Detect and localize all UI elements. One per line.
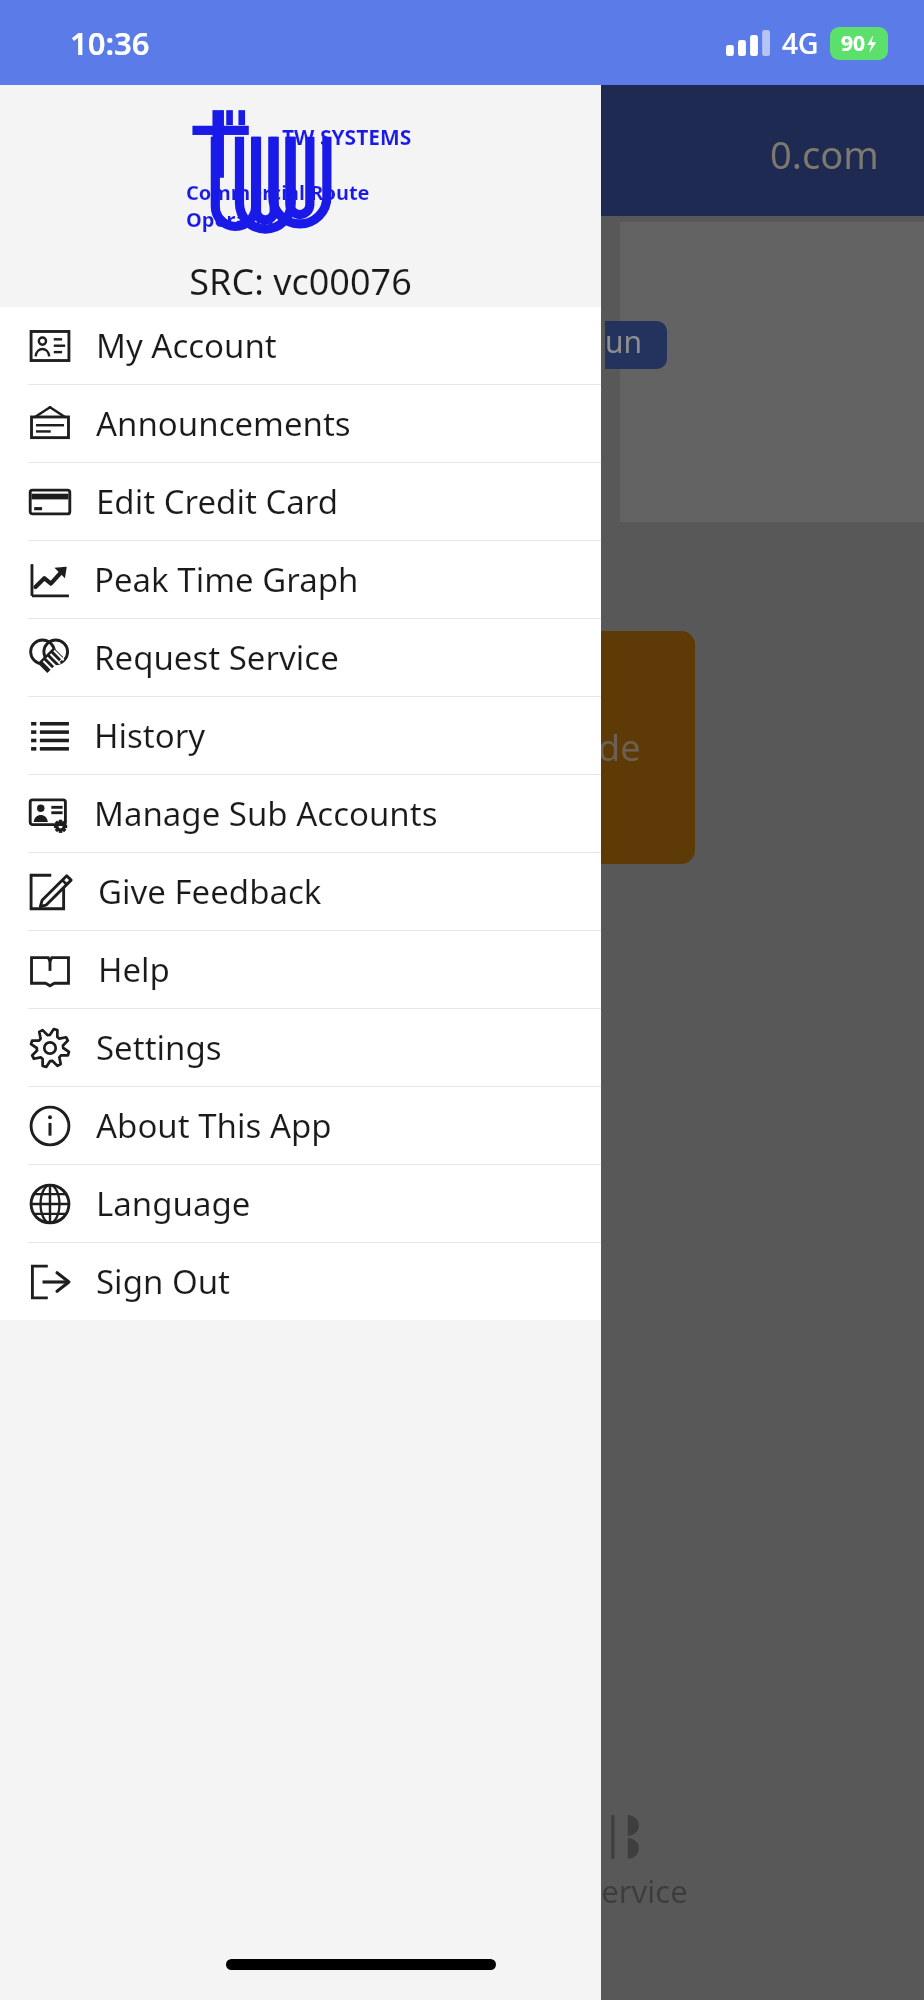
button[interactable]: Request Service xyxy=(565,1812,765,1912)
button[interactable]: Peak Time Graph xyxy=(0,541,601,618)
button[interactable]: Edit Credit Card xyxy=(0,463,601,540)
staticText: Request Service xyxy=(94,635,339,680)
button[interactable]: Language xyxy=(0,1165,601,1242)
staticText: Help xyxy=(98,947,170,992)
button[interactable]: Give Feedback xyxy=(0,853,601,930)
staticText: History xyxy=(94,713,206,758)
staticText: Manage Sub Accounts xyxy=(94,791,438,836)
staticText: 10:36 xyxy=(70,22,150,64)
staticText: 90 xyxy=(841,29,866,58)
staticText: Give Feedback xyxy=(98,869,322,914)
staticText: Commercial Route Operator xyxy=(186,179,416,233)
button[interactable]: unds xyxy=(605,321,667,369)
staticText: de xyxy=(598,723,641,772)
staticText: Settings xyxy=(96,1025,222,1070)
staticText: unds xyxy=(605,321,659,369)
button[interactable]: History xyxy=(0,697,601,774)
staticText: Edit Credit Card xyxy=(96,479,339,524)
button[interactable]: Manage Sub Accounts xyxy=(0,775,601,852)
button[interactable]: Request Service xyxy=(0,619,601,696)
button[interactable]: About This App xyxy=(0,1087,601,1164)
staticText: SRC: vc00076 xyxy=(189,257,412,306)
staticText: Peak Time Graph xyxy=(94,557,359,602)
button[interactable]: Settings xyxy=(0,1009,601,1086)
button[interactable]: My Account xyxy=(0,307,601,384)
button[interactable]: Help xyxy=(0,931,601,1008)
staticText: Language xyxy=(96,1181,251,1226)
button[interactable]: Announcements xyxy=(0,385,601,462)
staticText: Sign Out xyxy=(96,1259,230,1304)
staticText: 0.com xyxy=(770,128,879,180)
button[interactable]: de xyxy=(560,631,695,864)
staticText: TW SYSTEMS xyxy=(282,123,412,152)
button[interactable]: Sign Out xyxy=(0,1243,601,1320)
staticText: t Service xyxy=(565,1870,688,1912)
staticText: My Account xyxy=(96,323,277,368)
staticText: About This App xyxy=(96,1103,332,1148)
staticText: Announcements xyxy=(96,401,351,446)
staticText: 4G xyxy=(782,24,819,62)
